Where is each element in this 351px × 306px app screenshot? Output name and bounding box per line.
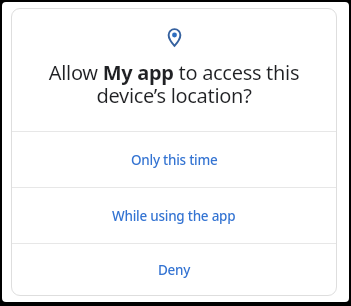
staticText: Only this time [131,151,218,169]
staticText: Deny [158,261,191,279]
button[interactable]: Deny [11,244,337,296]
button[interactable]: While using the app [11,188,337,243]
button[interactable]: Only this time [11,132,337,187]
staticText: Allow My app to access this device’s loc… [11,59,337,109]
staticText: While using the app [112,207,236,225]
